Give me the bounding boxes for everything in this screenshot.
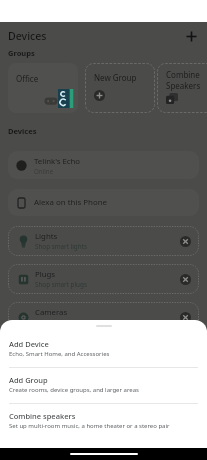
staticText: Office xyxy=(16,73,39,84)
staticText: Lights xyxy=(35,231,58,242)
staticText: Online xyxy=(34,167,54,175)
staticText: Groups xyxy=(8,48,35,58)
staticText: Combine xyxy=(166,69,200,80)
button[interactable]: Dismiss xyxy=(176,308,194,326)
staticText: New Group xyxy=(94,72,137,83)
button[interactable]: Add Device xyxy=(0,339,207,375)
button[interactable]: Dismiss xyxy=(176,232,194,250)
staticText: Create rooms, device groups, and larger … xyxy=(9,386,139,394)
staticText: Echo, Smart Home, and Accessories xyxy=(9,350,110,358)
button[interactable]: New Group xyxy=(85,63,155,113)
staticText: Add Group xyxy=(9,375,48,385)
button[interactable]: Add Group xyxy=(0,375,207,411)
button[interactable]: Plugs xyxy=(8,264,199,294)
staticText: Combine speakers xyxy=(9,411,76,421)
button[interactable]: Telink's Echo xyxy=(8,151,199,179)
button[interactable]: Alexa on this Phone xyxy=(8,189,199,216)
staticText: Devices xyxy=(8,29,47,43)
staticText: Alexa on this Phone xyxy=(34,197,108,208)
staticText: Speakers xyxy=(166,80,201,91)
button[interactable]: Combine speakers xyxy=(0,411,207,447)
button[interactable]: Combine xyxy=(157,63,207,113)
staticText: Plugs xyxy=(35,269,56,280)
staticText: Shop smart plugs xyxy=(35,280,87,289)
staticText: Shop smart cameras xyxy=(35,318,96,327)
staticText: Cameras xyxy=(35,307,68,318)
staticText: Add Device xyxy=(9,339,49,349)
button[interactable]: Lights xyxy=(8,226,199,256)
button[interactable]: Add xyxy=(182,27,200,45)
staticText: Set up multi-room music, a home theater … xyxy=(9,422,170,430)
button[interactable]: Cameras xyxy=(8,302,199,332)
staticText: Shop smart lights xyxy=(35,242,87,251)
staticText: Devices xyxy=(8,126,37,136)
button[interactable]: Office xyxy=(8,63,78,113)
button[interactable]: Dismiss xyxy=(176,270,194,288)
staticText: Telink's Echo xyxy=(34,156,81,167)
